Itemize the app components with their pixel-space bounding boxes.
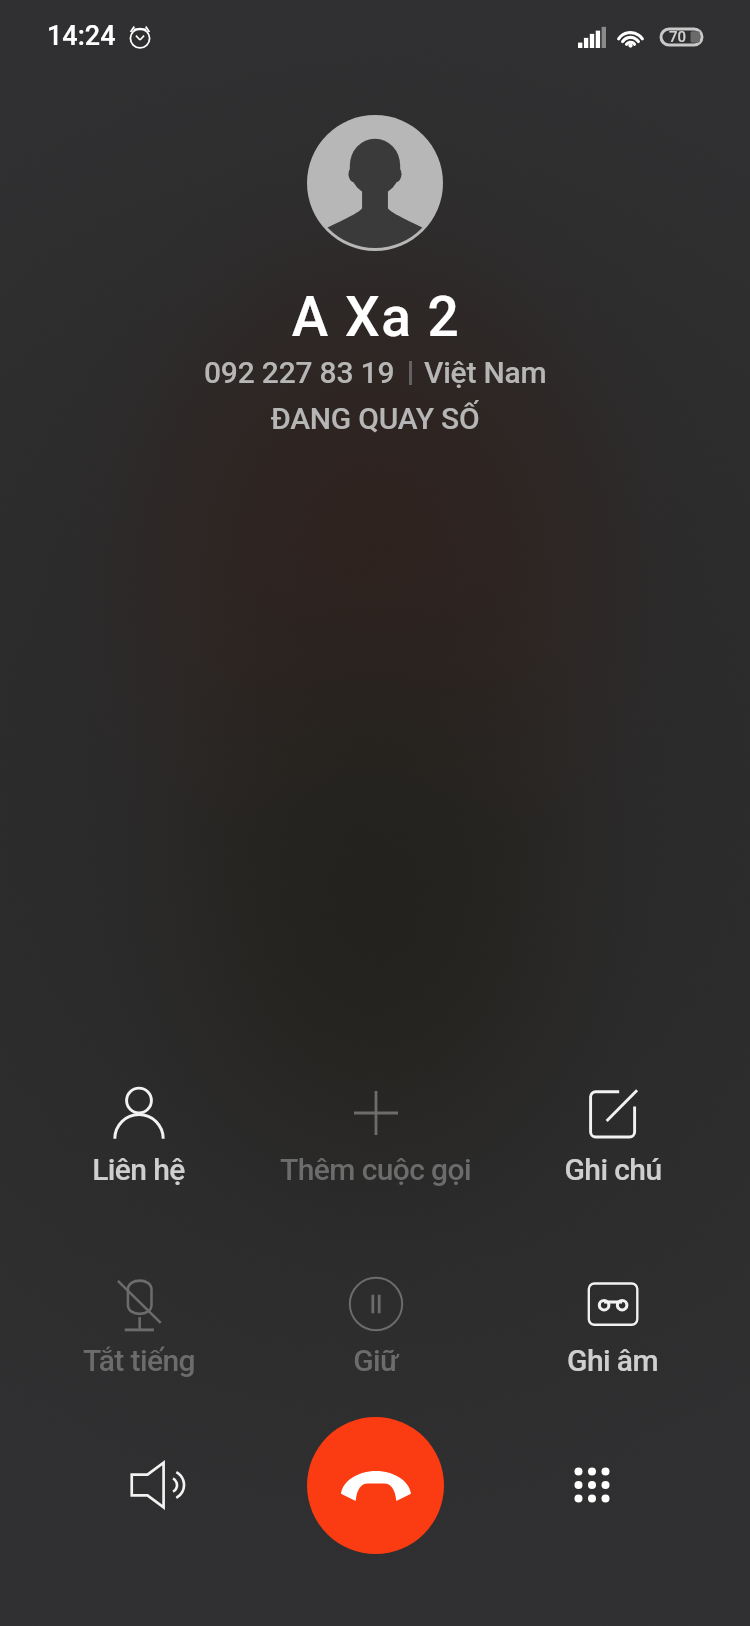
button[interactable]: Thêm cuộc gọi bbox=[257, 1068, 494, 1187]
staticText: 14:24 bbox=[47, 20, 116, 52]
staticText: Tắt tiếng bbox=[83, 1343, 195, 1378]
button[interactable]: Ghi chú bbox=[494, 1068, 731, 1187]
staticText: A Xa 2 bbox=[1, 285, 750, 349]
button[interactable]: Tắt tiếng bbox=[20, 1259, 257, 1378]
staticText: Ghi âm bbox=[567, 1343, 658, 1378]
button[interactable]: End call bbox=[307, 1417, 444, 1554]
staticText: Giữ bbox=[353, 1343, 398, 1378]
button[interactable]: Keypad bbox=[542, 1417, 642, 1553]
button[interactable]: Speaker bbox=[108, 1417, 208, 1553]
button[interactable]: Ghi âm bbox=[494, 1259, 731, 1378]
staticText: Thêm cuộc gọi bbox=[280, 1152, 471, 1187]
staticText: Liên hệ bbox=[92, 1152, 185, 1187]
staticText: Ghi chú bbox=[564, 1152, 662, 1187]
button[interactable]: Liên hệ bbox=[20, 1068, 257, 1187]
staticText: 092 227 83 19 bbox=[204, 355, 395, 390]
staticText: ĐANG QUAY SỐ bbox=[0, 401, 750, 436]
button[interactable]: Giữ bbox=[257, 1259, 494, 1378]
staticText: Việt Nam bbox=[424, 355, 547, 390]
staticText: 70 bbox=[669, 28, 687, 46]
